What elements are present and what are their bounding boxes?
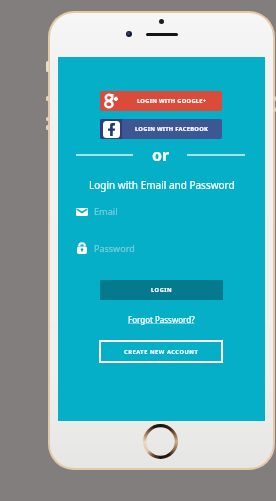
button[interactable]: Forgot Password? [128, 314, 195, 325]
staticText: Login with Email and Password [89, 178, 235, 192]
button[interactable]: LOGIN [100, 280, 223, 300]
other: Home [143, 424, 178, 459]
staticText: or [152, 144, 170, 166]
staticText: LOGIN WITH FACEBOOK [135, 125, 209, 133]
button[interactable]: CREATE NEW ACCOUNT [99, 340, 223, 363]
staticText: Password [94, 242, 135, 254]
staticText: LOGIN WITH GOOGLE+ [137, 97, 207, 105]
button[interactable]: Password [77, 239, 247, 256]
button[interactable]: Email [76, 203, 246, 220]
button[interactable]: LOGIN WITH GOOGLE+ [100, 91, 222, 111]
staticText: LOGIN [151, 286, 173, 294]
button[interactable]: LOGIN WITH FACEBOOK [100, 119, 222, 139]
staticText: Email [94, 205, 118, 218]
staticText: CREATE NEW ACCOUNT [124, 348, 199, 356]
